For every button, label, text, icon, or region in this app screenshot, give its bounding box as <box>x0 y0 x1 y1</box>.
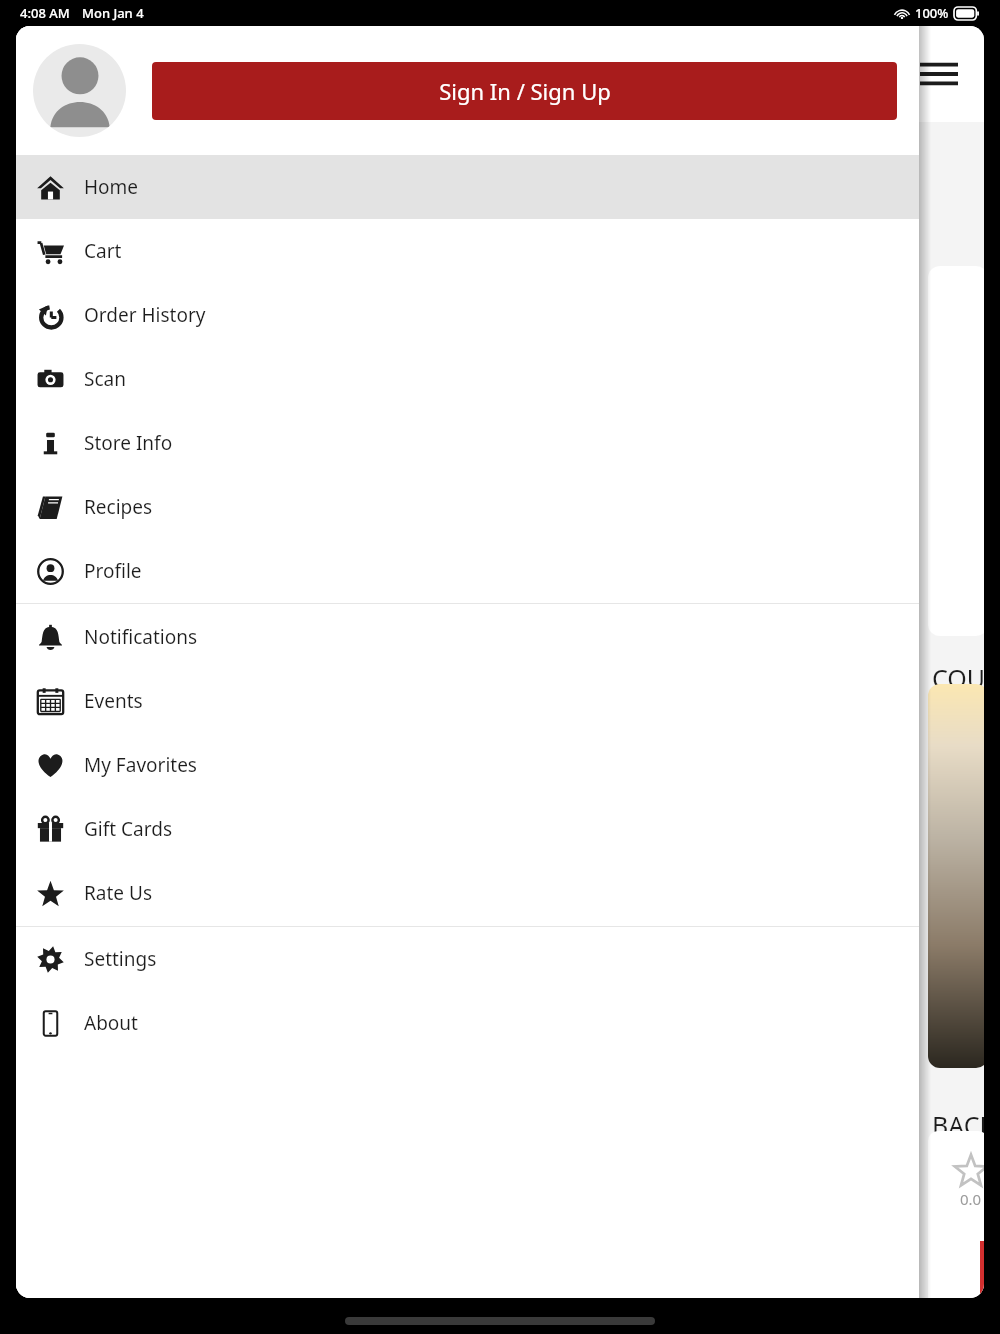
staticText: Recipes <box>84 494 153 520</box>
staticText: Gift Cards <box>84 816 172 842</box>
button[interactable]: Rate Us <box>16 861 919 925</box>
button[interactable]: About <box>16 991 919 1055</box>
button[interactable]: Open navigation menu <box>917 52 961 96</box>
staticText: Profile <box>84 558 142 584</box>
button[interactable]: Cart <box>16 219 919 283</box>
button[interactable]: Store Info <box>16 411 919 475</box>
button[interactable]: My Favorites <box>16 733 919 797</box>
staticText: Home <box>84 174 139 200</box>
staticText: 4:08 AM <box>20 4 70 22</box>
staticText: Notifications <box>84 624 198 650</box>
staticText: Rate Us <box>84 880 152 906</box>
staticText: BACK <box>932 1108 984 1142</box>
staticText: Events <box>84 688 143 714</box>
button[interactable]: Home <box>16 155 919 219</box>
staticText: Cart <box>84 238 122 264</box>
staticText: About <box>84 1010 138 1036</box>
staticText: Mon Jan 4 <box>82 4 144 22</box>
button[interactable]: Profile <box>16 539 919 603</box>
button[interactable]: Settings <box>16 927 919 991</box>
staticText: Order History <box>84 302 206 328</box>
button[interactable]: Profile photo <box>33 44 126 137</box>
staticText: Store Info <box>84 430 173 456</box>
button[interactable]: Order History <box>16 283 919 347</box>
button[interactable]: Scan <box>16 347 919 411</box>
button[interactable]: Gift Cards <box>16 797 919 861</box>
staticText: 0.0 <box>960 1189 982 1209</box>
button[interactable]: Events <box>16 669 919 733</box>
staticText: My Favorites <box>84 752 197 778</box>
staticText: Settings <box>84 946 157 972</box>
staticText: Scan <box>84 366 126 392</box>
button[interactable]: Recipes <box>16 475 919 539</box>
button[interactable]: Sign In / Sign Up <box>152 62 897 120</box>
staticText: Sign In / Sign Up <box>439 76 611 106</box>
button[interactable]: Notifications <box>16 605 919 669</box>
staticText: COUN <box>932 661 984 695</box>
staticText: 100% <box>915 4 949 22</box>
